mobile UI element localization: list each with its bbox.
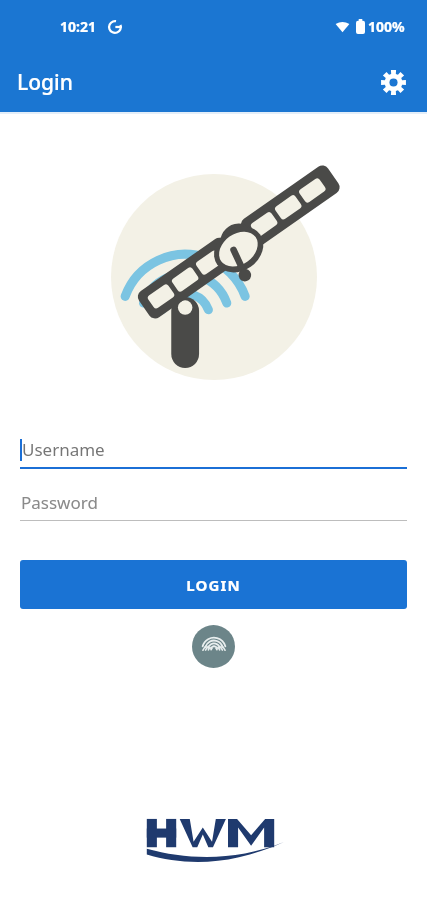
button[interactable]: Fingerprint login <box>192 625 235 668</box>
button[interactable]: Username <box>20 438 407 469</box>
staticText: LOGIN <box>186 575 241 595</box>
staticText: Username <box>22 438 105 461</box>
button[interactable]: LOGIN <box>20 560 407 609</box>
staticText: 100% <box>368 17 405 36</box>
staticText: Login <box>17 68 73 97</box>
staticText: 10:21 <box>60 17 96 36</box>
staticText: Password <box>21 491 98 514</box>
button[interactable]: Password <box>20 491 407 521</box>
button[interactable]: Settings <box>371 60 415 104</box>
